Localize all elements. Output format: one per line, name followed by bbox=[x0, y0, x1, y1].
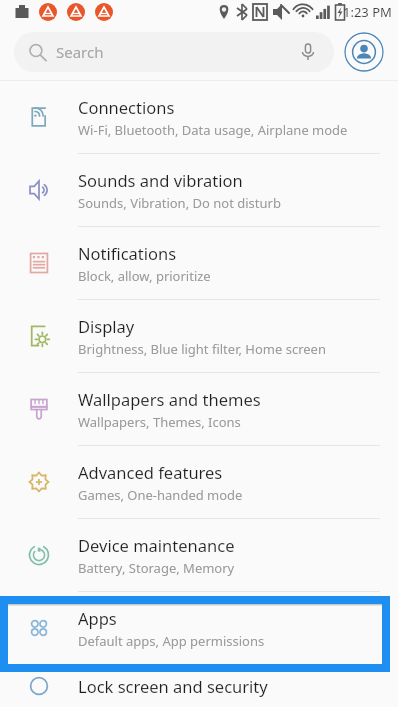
staticText: Sounds, Vibration, Do not disturb bbox=[78, 194, 281, 212]
button[interactable]: Account bbox=[344, 32, 384, 72]
button[interactable]: Sounds and vibration bbox=[0, 154, 398, 226]
button[interactable]: Lock screen and security bbox=[0, 665, 398, 707]
staticText: Apps bbox=[78, 607, 117, 629]
staticText: Default apps, App permissions bbox=[78, 632, 265, 650]
staticText: Battery, Storage, Memory bbox=[78, 559, 235, 577]
button[interactable]: Apps bbox=[0, 592, 398, 664]
staticText: Notifications bbox=[78, 242, 177, 264]
staticText: Connections bbox=[78, 96, 175, 118]
staticText: Wallpapers, Themes, Icons bbox=[78, 413, 241, 431]
staticText: Display bbox=[78, 315, 135, 337]
staticText: 1:23 PM bbox=[343, 3, 392, 21]
button[interactable]: Advanced features bbox=[0, 446, 398, 518]
staticText: Wi-Fi, Bluetooth, Data usage, Airplane m… bbox=[78, 121, 348, 139]
staticText: Games, One-handed mode bbox=[78, 486, 243, 504]
staticText: Search bbox=[56, 42, 104, 62]
staticText: Block, allow, prioritize bbox=[78, 267, 211, 285]
staticText: Device maintenance bbox=[78, 534, 235, 556]
button[interactable]: Notifications bbox=[0, 227, 398, 299]
button[interactable]: Wallpapers and themes bbox=[0, 373, 398, 445]
button[interactable]: Device maintenance bbox=[0, 519, 398, 591]
staticText: Brightness, Blue light filter, Home scre… bbox=[78, 340, 326, 358]
staticText: Sounds and vibration bbox=[78, 169, 243, 191]
staticText: Lock screen and security bbox=[78, 675, 268, 697]
button[interactable]: Search bbox=[14, 32, 334, 72]
button[interactable]: Connections bbox=[0, 81, 398, 153]
staticText: Advanced features bbox=[78, 461, 223, 483]
staticText: Wallpapers and themes bbox=[78, 388, 261, 410]
button[interactable]: Display bbox=[0, 300, 398, 372]
button[interactable]: Voice search bbox=[296, 40, 320, 64]
